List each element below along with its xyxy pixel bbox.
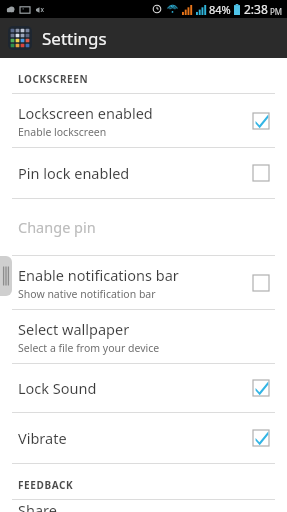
- button[interactable]: Lock Sound: [0, 364, 287, 412]
- staticText: Settings: [42, 27, 107, 50]
- button[interactable]: Enable notifications bar: [0, 256, 287, 309]
- staticText: Pin lock enabled: [18, 163, 253, 183]
- staticText: Enable notifications bar: [18, 265, 179, 285]
- staticText: LOCKSCREEN: [18, 72, 89, 86]
- staticText: Lock Sound: [18, 378, 253, 398]
- other: App icon: [8, 26, 32, 50]
- staticText: 84%: [209, 2, 231, 17]
- button[interactable]: Open navigation drawer: [0, 256, 12, 296]
- button[interactable]: Share: [0, 500, 287, 512]
- staticText: Share: [18, 500, 253, 512]
- staticText: FEEDBACK: [18, 478, 74, 492]
- staticText: Show native notification bar: [18, 287, 156, 301]
- staticText: Enable lockscreen: [18, 125, 107, 139]
- button[interactable]: App icon: [0, 18, 287, 58]
- staticText: Select a file from your device: [18, 341, 160, 355]
- staticText: PM: [270, 6, 283, 17]
- staticText: Change pin: [18, 217, 253, 237]
- button[interactable]: Change pin: [0, 199, 287, 255]
- staticText: Select wallpaper: [18, 319, 130, 339]
- staticText: Vibrate: [18, 428, 253, 448]
- button[interactable]: Vibrate: [0, 413, 287, 463]
- staticText: Lockscreen enabled: [18, 103, 153, 123]
- button[interactable]: Select wallpaper: [0, 310, 287, 363]
- staticText: 2:38: [244, 1, 268, 17]
- button[interactable]: Pin lock enabled: [0, 148, 287, 198]
- button[interactable]: Lockscreen enabled: [0, 94, 287, 147]
